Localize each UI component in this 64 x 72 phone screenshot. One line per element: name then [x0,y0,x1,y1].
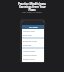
button[interactable]: Loving Kindness [22,53,44,57]
button[interactable]: Evening Wind [22,57,44,61]
staticText: Practice Mindfulness [18,2,46,5]
staticText: Exercises from Your [19,5,46,8]
staticText: Loving Kindness [23,54,37,56]
button[interactable]: Gratitude [22,43,44,47]
button[interactable]: Walking Medit. [22,49,44,53]
button[interactable]: Sleep Story [22,61,44,62]
button[interactable]: Morning Calm [22,29,44,33]
staticText: Evening Wind [23,58,35,60]
staticText: My Plans [29,26,38,29]
staticText: Breathing Space [23,40,37,42]
button[interactable]: Breathing Space [22,39,44,43]
button[interactable]: Body Scan [22,33,44,37]
staticText: Body Scan [23,34,32,36]
staticText: Morning Calm [23,30,36,32]
button[interactable]: My Plans [22,21,44,62]
staticText: Gratitude [23,44,32,46]
staticText: Tap a plan to begin [22,11,42,14]
staticText: Walking Medit. [23,50,36,52]
staticText: Plans [28,8,36,11]
